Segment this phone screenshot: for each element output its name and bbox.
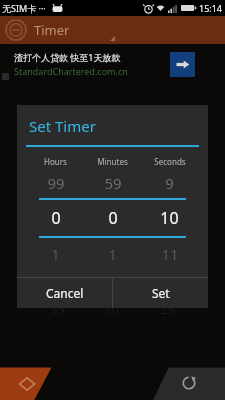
button[interactable]: 0 [84, 207, 141, 229]
button[interactable]: Cancel [17, 278, 112, 308]
staticText: Timer [34, 21, 70, 39]
staticText: 59 [104, 173, 122, 193]
button[interactable]: 11 [141, 244, 198, 264]
button[interactable]: 0 [27, 207, 84, 229]
button[interactable]: 99 [27, 173, 84, 193]
button[interactable]: 渣打个人贷款 快至1天放款 [0, 44, 225, 84]
staticText: 30 [104, 300, 119, 318]
button[interactable]: 59 [84, 173, 141, 193]
staticText: Seconds [154, 156, 186, 167]
staticText: 15:14 [199, 2, 223, 14]
button[interactable]: Reset [153, 363, 225, 400]
staticText: 11 [161, 244, 179, 264]
staticText: 9 [165, 173, 174, 193]
staticText: StandardChartered.com.cn [14, 65, 128, 77]
button[interactable]: App icon [0, 16, 225, 44]
staticText: 1 [51, 244, 60, 264]
button[interactable]: 1 [84, 244, 141, 264]
button[interactable]: 9 [141, 173, 198, 193]
staticText: Hours [44, 156, 67, 167]
button[interactable]: Set [113, 278, 208, 308]
button[interactable]: Start timer [0, 363, 66, 400]
staticText: 99 [47, 173, 65, 193]
staticText: Set [152, 285, 170, 301]
button[interactable]: Open ad [170, 52, 195, 77]
staticText: Set Timer [29, 116, 96, 136]
staticText: 0 [108, 207, 118, 229]
other: App icon [6, 20, 26, 40]
button[interactable]: 10 [141, 207, 198, 229]
staticText: 10 [160, 207, 179, 229]
staticText: Cancel [46, 285, 84, 301]
staticText: 0 [51, 207, 61, 229]
button[interactable]: 1 [27, 244, 84, 264]
staticText: 渣打个人贷款 快至1天放款 [14, 51, 121, 63]
staticText: 35 [50, 300, 65, 318]
staticText: 25 [160, 300, 175, 318]
staticText: 无SIM卡 ··· [2, 2, 46, 14]
staticText: Minutes [97, 156, 128, 167]
staticText: 1 [108, 244, 117, 264]
